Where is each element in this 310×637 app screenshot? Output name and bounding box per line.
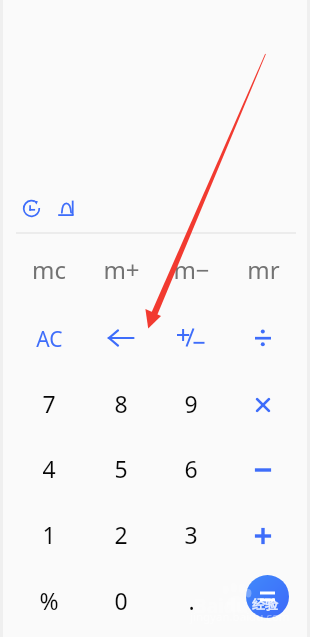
- staticText: 9: [184, 388, 198, 419]
- button[interactable]: 9: [158, 375, 224, 431]
- staticText: AC: [36, 325, 63, 354]
- button[interactable]: Equals: [246, 575, 289, 618]
- button[interactable]: Graph: [52, 194, 80, 222]
- button[interactable]: 4: [16, 440, 82, 496]
- button[interactable]: mc: [16, 241, 82, 297]
- button[interactable]: History: [17, 194, 45, 222]
- staticText: .: [188, 585, 195, 616]
- staticText: 2: [114, 519, 128, 550]
- staticText: 经验: [252, 596, 278, 612]
- staticText: mc: [32, 253, 66, 286]
- button[interactable]: 5: [88, 440, 154, 496]
- staticText: 1: [42, 519, 56, 550]
- button[interactable]: Backspace: [88, 310, 154, 366]
- button[interactable]: 8: [88, 375, 154, 431]
- button[interactable]: AC: [16, 311, 82, 367]
- button[interactable]: m+: [88, 241, 154, 297]
- button[interactable]: Plus minus: [158, 310, 224, 366]
- staticText: 7: [42, 388, 56, 419]
- staticText: %: [39, 585, 59, 616]
- button[interactable]: m−: [158, 241, 224, 297]
- button[interactable]: .: [158, 572, 224, 628]
- button[interactable]: %: [16, 572, 82, 628]
- staticText: m+: [103, 253, 140, 286]
- button[interactable]: mr: [230, 241, 296, 297]
- button[interactable]: Plus: [230, 508, 296, 564]
- staticText: m−: [173, 253, 210, 286]
- button[interactable]: Minus: [230, 442, 296, 498]
- button[interactable]: 0: [88, 572, 154, 628]
- button[interactable]: 6: [158, 440, 224, 496]
- staticText: Baidu: [194, 593, 249, 619]
- staticText: 0: [114, 585, 128, 616]
- staticText: 4: [42, 453, 56, 484]
- button[interactable]: Divide: [230, 310, 296, 366]
- staticText: 6: [184, 453, 198, 484]
- button[interactable]: 1: [16, 506, 82, 562]
- button[interactable]: 7: [16, 375, 82, 431]
- staticText: 3: [184, 519, 198, 550]
- staticText: 8: [114, 388, 128, 419]
- staticText: mr: [247, 253, 280, 286]
- staticText: 5: [114, 453, 128, 484]
- button[interactable]: 3: [158, 506, 224, 562]
- button[interactable]: 2: [88, 506, 154, 562]
- button[interactable]: Multiply: [230, 377, 296, 433]
- staticText: jingyan.baidu.com: [190, 609, 290, 625]
